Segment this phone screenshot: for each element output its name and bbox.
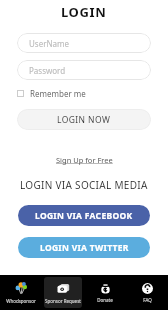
staticText: LOGIN VIA TWITTER: [40, 242, 129, 254]
staticText: Donate: [97, 297, 113, 303]
staticText: LOGIN VIA SOCIAL MEDIA: [20, 178, 148, 192]
staticText: FAQ: [143, 297, 152, 303]
staticText: Sponsor Request: [45, 298, 81, 304]
staticText: Password: [29, 65, 66, 76]
button[interactable]: Password: [17, 60, 151, 80]
other: Sponsor Request: [56, 281, 71, 296]
button[interactable]: Sign Up for Free: [56, 155, 113, 165]
button[interactable]: Remember me: [17, 88, 86, 99]
button[interactable]: LOGIN VIA TWITTER: [18, 237, 150, 258]
other: Donate: [99, 282, 112, 295]
button[interactable]: LOGIN NOW: [17, 109, 151, 130]
button[interactable]: Donate: [86, 277, 124, 308]
button[interactable]: UserName: [17, 33, 151, 53]
button[interactable]: Whodsponsor: [2, 277, 40, 308]
staticText: UserName: [29, 38, 70, 49]
staticText: Remember me: [30, 88, 86, 99]
other: Whodsponsor: [14, 281, 29, 296]
staticText: Whodsponsor: [6, 298, 36, 304]
staticText: LOGIN VIA FACEBOOK: [35, 210, 133, 222]
button[interactable]: FAQ: [128, 277, 166, 308]
staticText: LOGIN: [61, 3, 107, 21]
button[interactable]: Sponsor Request: [44, 277, 82, 308]
button[interactable]: LOGIN VIA FACEBOOK: [18, 205, 150, 226]
staticText: LOGIN NOW: [57, 114, 111, 126]
other: FAQ: [141, 282, 154, 295]
